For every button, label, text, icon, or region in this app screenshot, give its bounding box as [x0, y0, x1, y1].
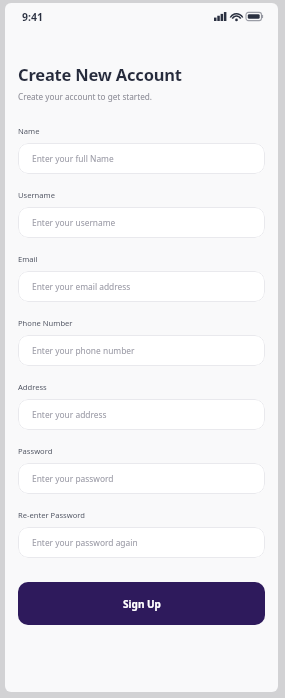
staticText: Re-enter Password: [18, 510, 85, 520]
staticText: Enter your email address: [32, 281, 131, 292]
staticText: Password: [18, 446, 53, 456]
staticText: Phone Number: [18, 318, 73, 328]
staticText: Enter your full Name: [32, 153, 114, 164]
button[interactable]: Sign Up: [18, 582, 265, 625]
button[interactable]: Enter your phone number: [18, 335, 265, 366]
button[interactable]: Enter your username: [18, 207, 265, 238]
staticText: Create your account to get started.: [18, 91, 153, 102]
staticText: Create New Account: [18, 63, 182, 85]
staticText: Enter your password again: [32, 537, 138, 548]
staticText: 9:41: [22, 10, 43, 24]
staticText: Email: [18, 254, 38, 264]
button[interactable]: Enter your address: [18, 399, 265, 430]
staticText: Enter your address: [32, 409, 107, 420]
staticText: Enter your phone number: [32, 345, 135, 356]
button[interactable]: Enter your password again: [18, 527, 265, 558]
staticText: Enter your password: [32, 473, 114, 484]
button[interactable]: Enter your password: [18, 463, 265, 494]
button[interactable]: Enter your full Name: [18, 143, 265, 174]
staticText: Enter your username: [32, 217, 116, 228]
staticText: Name: [18, 126, 40, 136]
staticText: Address: [18, 382, 47, 392]
staticText: Sign Up: [123, 597, 161, 611]
button[interactable]: Enter your email address: [18, 271, 265, 302]
staticText: Username: [18, 190, 55, 200]
